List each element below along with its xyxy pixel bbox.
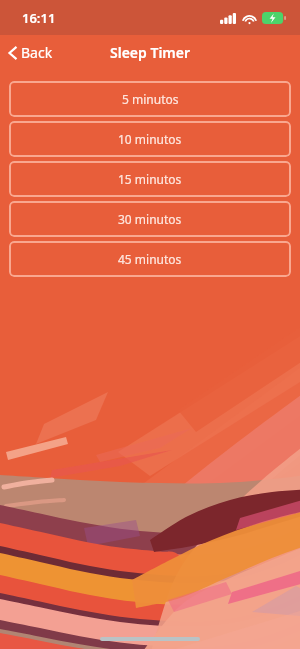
button[interactable]: 15 minutos <box>9 161 291 197</box>
button[interactable]: 45 minutos <box>9 241 291 277</box>
other: Battery charging <box>262 12 286 24</box>
other: Wi-Fi <box>242 13 257 24</box>
other: Cellular signal <box>220 13 237 24</box>
staticText: 10 minutos <box>118 131 182 147</box>
staticText: 30 minutos <box>118 211 182 227</box>
button[interactable]: 5 minutos <box>9 81 291 117</box>
staticText: 5 minutos <box>122 91 179 107</box>
staticText: 45 minutos <box>118 251 182 267</box>
staticText: Sleep Timer <box>110 43 191 62</box>
button[interactable]: 10 minutos <box>9 121 291 157</box>
button[interactable]: 30 minutos <box>9 201 291 237</box>
staticText: 16:11 <box>22 9 56 27</box>
staticText: Back <box>21 43 53 62</box>
staticText: 15 minutos <box>118 171 182 187</box>
button[interactable]: Back <box>0 39 61 66</box>
